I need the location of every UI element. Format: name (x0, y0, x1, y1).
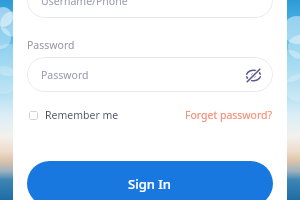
staticText: Forget password? (185, 108, 273, 122)
button[interactable]: Username/Phone (27, 0, 273, 18)
staticText: Username/Phone (41, 0, 128, 8)
button[interactable]: Remember me (29, 108, 119, 122)
staticText: Password (27, 38, 75, 52)
button[interactable]: Password (27, 57, 273, 92)
button[interactable]: Sign In (27, 161, 273, 200)
staticText: Password (41, 68, 89, 82)
staticText: Remember me (45, 108, 119, 122)
staticText: Sign In (128, 175, 172, 193)
button[interactable]: Forget password? (185, 108, 273, 122)
button[interactable]: Show password (243, 65, 263, 85)
